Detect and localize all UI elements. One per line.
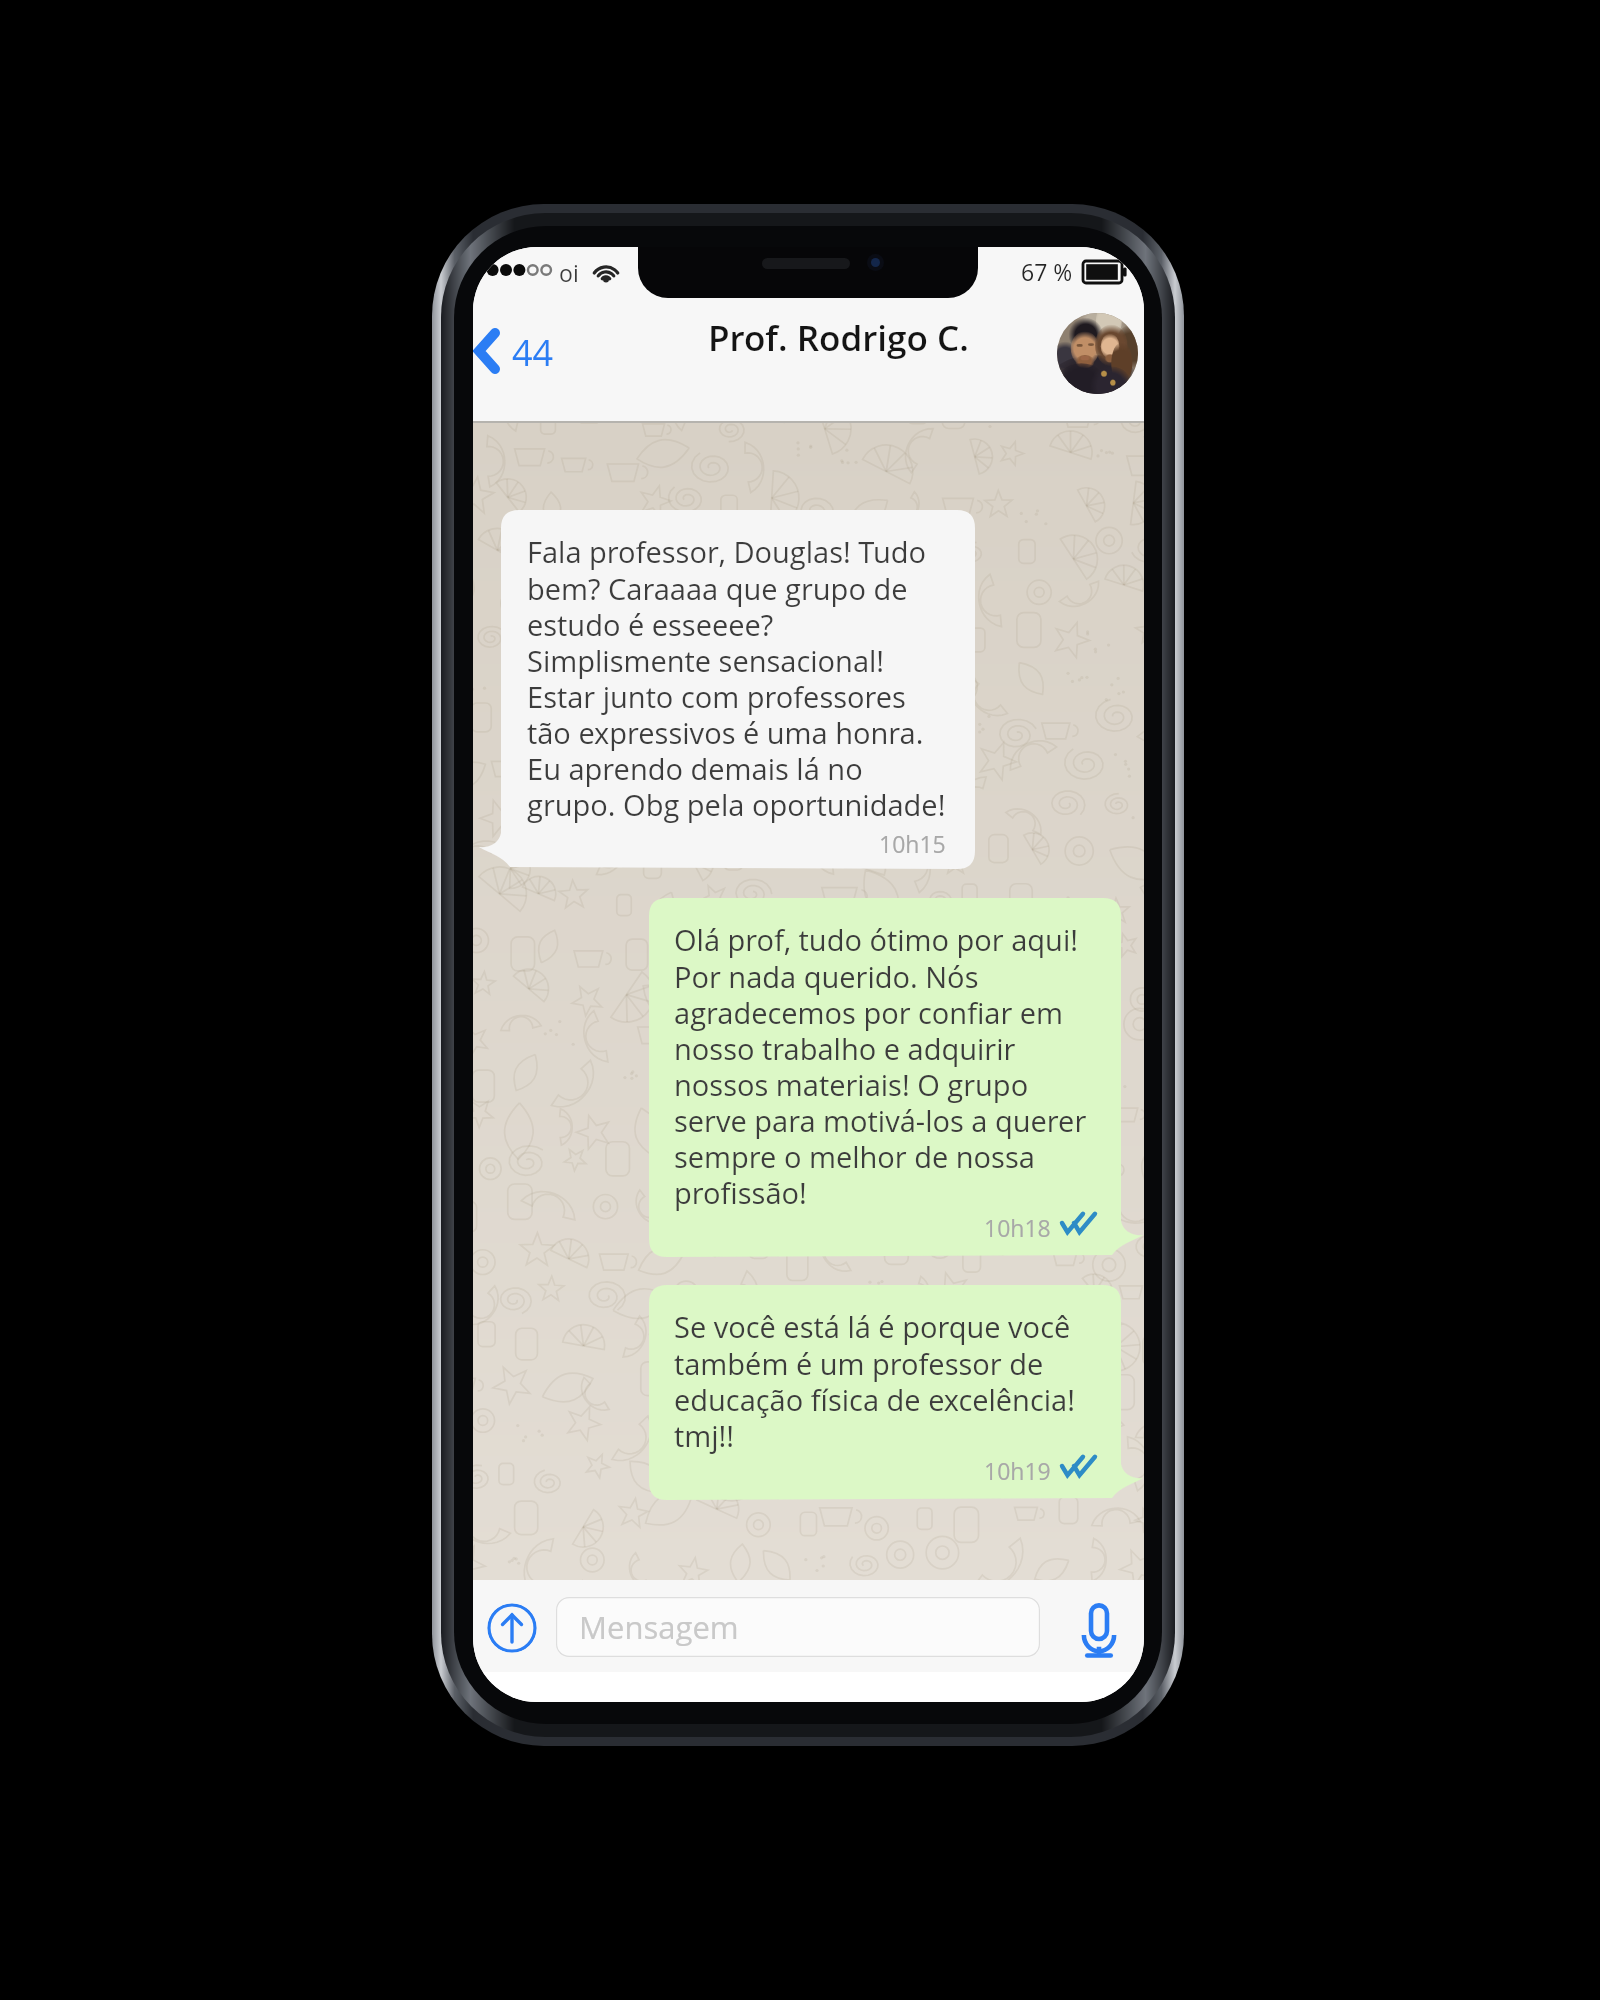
button[interactable]: Se você está lá é porque você também é u… — [649, 1285, 1143, 1500]
staticText: Se você está lá é porque você também é u… — [674, 1307, 1075, 1455]
button[interactable]: Voice message — [1078, 1602, 1120, 1658]
button[interactable]: Mensagem — [556, 1597, 1040, 1657]
button[interactable]: Fala professor, Douglas! Tudo bem? Caraa… — [479, 510, 975, 869]
staticText: 10h19 — [984, 1455, 1051, 1486]
staticText: 10h15 — [879, 828, 946, 859]
staticText: 67 % — [1021, 256, 1073, 287]
staticText: Prof. Rodrigo C. — [708, 314, 969, 362]
staticText: Mensagem — [579, 1606, 739, 1648]
button[interactable]: Prof. Rodrigo C. — [708, 314, 969, 362]
staticText: oi — [559, 257, 579, 288]
staticText: Fala professor, Douglas! Tudo bem? Caraa… — [527, 532, 946, 824]
button[interactable]: Back to 44 chats — [473, 318, 568, 383]
staticText: 10h18 — [984, 1212, 1051, 1243]
button[interactable]: Olá prof, tudo ótimo por aqui! Por nada … — [649, 898, 1143, 1257]
staticText: Olá prof, tudo ótimo por aqui! Por nada … — [674, 920, 1087, 1212]
staticText: 44 — [512, 328, 554, 377]
button[interactable]: Contact photo — [1057, 313, 1138, 394]
button[interactable]: Attach — [487, 1603, 537, 1653]
